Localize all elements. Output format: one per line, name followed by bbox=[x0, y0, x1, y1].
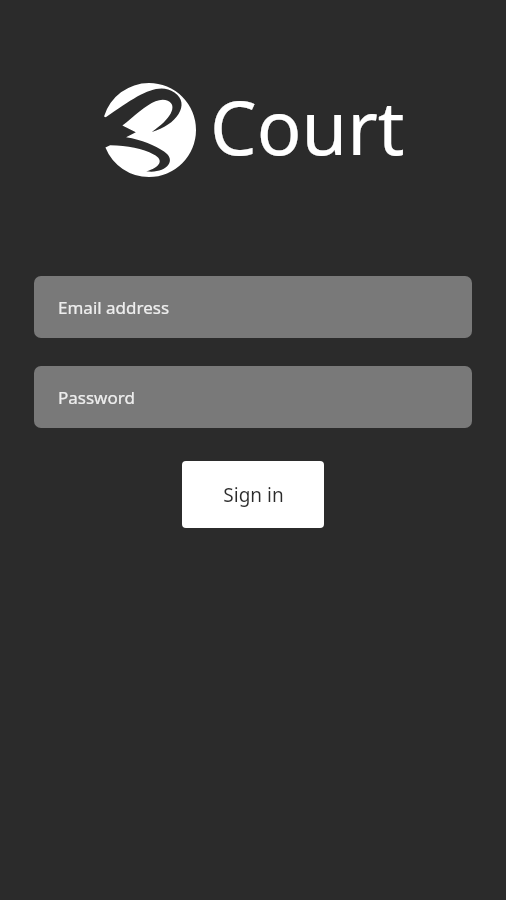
other: Court logo bbox=[102, 83, 196, 177]
staticText: Sign in bbox=[223, 482, 284, 508]
button[interactable]: Password bbox=[34, 366, 472, 428]
button[interactable]: Sign in bbox=[182, 461, 324, 528]
staticText: Court bbox=[210, 76, 405, 177]
staticText: Password bbox=[58, 386, 135, 409]
button[interactable]: Email address bbox=[34, 276, 472, 338]
staticText: Email address bbox=[58, 296, 170, 319]
